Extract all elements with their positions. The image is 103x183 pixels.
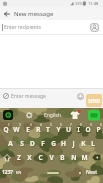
staticText: Q: [3, 125, 9, 134]
button[interactable]: V: [46, 150, 57, 165]
button[interactable]: Enter recipients: [0, 20, 103, 34]
staticText: Y: [56, 125, 61, 134]
button[interactable]: S: [16, 136, 27, 150]
button[interactable]: G: [48, 136, 58, 150]
staticText: C: [38, 153, 43, 162]
staticText: New message: [14, 10, 54, 18]
staticText: K: [81, 139, 86, 148]
button[interactable]: F: [38, 136, 48, 150]
staticText: 6: [60, 123, 62, 127]
button[interactable]: 9: [83, 122, 93, 136]
staticText: Z: [17, 153, 21, 162]
staticText: 5: [50, 123, 52, 127]
staticText: 3: [30, 123, 32, 127]
staticText: V: [49, 153, 54, 162]
staticText: 7: [70, 123, 72, 127]
staticText: L: [91, 139, 95, 148]
staticText: 2: [19, 123, 21, 127]
staticText: R: [36, 125, 41, 134]
button[interactable]: EN: [16, 170, 22, 175]
button[interactable]: [26, 112, 33, 119]
button[interactable]: B: [57, 150, 68, 165]
button[interactable]: [0, 150, 13, 165]
button[interactable]: C: [35, 150, 46, 165]
button[interactable]: [47, 172, 59, 174]
staticText: P: [96, 125, 101, 134]
button[interactable]: [70, 110, 81, 121]
button[interactable]: 2: [11, 122, 22, 136]
staticText: I: [77, 125, 80, 134]
button[interactable]: 0: [93, 122, 103, 136]
staticText: J: [72, 139, 75, 148]
staticText: X: [27, 153, 32, 162]
staticText: 33%: [75, 1, 83, 6]
staticText: 11:48: [88, 1, 99, 6]
button[interactable]: 6: [53, 122, 63, 136]
button[interactable]: 4: [33, 122, 43, 136]
staticText: 9: [90, 123, 92, 127]
staticText: E: [26, 125, 30, 134]
staticText: W: [13, 125, 20, 134]
button[interactable]: A: [5, 136, 16, 150]
button[interactable]: English: [44, 112, 62, 119]
button[interactable]: 123?: [2, 169, 13, 176]
button[interactable]: J: [68, 136, 78, 150]
button[interactable]: 3: [22, 122, 33, 136]
button[interactable]: K: [78, 136, 88, 150]
button[interactable]: [78, 171, 82, 175]
button[interactable]: Next: [86, 169, 98, 176]
staticText: O: [85, 125, 91, 134]
staticText: 0: [100, 123, 102, 127]
staticText: Enter message: [11, 93, 46, 100]
staticText: 8: [80, 123, 82, 127]
button[interactable]: [88, 110, 100, 121]
staticText: U: [66, 125, 71, 134]
staticText: N: [71, 153, 77, 162]
button[interactable]: [90, 23, 99, 32]
staticText: 1: [8, 123, 10, 127]
button[interactable]: 1: [0, 122, 11, 136]
button[interactable]: H: [58, 136, 68, 150]
button[interactable]: [90, 150, 103, 165]
staticText: M: [81, 153, 88, 162]
button[interactable]: [77, 93, 84, 100]
staticText: F: [41, 139, 45, 148]
staticText: H: [61, 139, 66, 148]
staticText: T: [46, 125, 50, 134]
button[interactable]: [3, 110, 13, 120]
staticText: 4: [40, 123, 42, 127]
button[interactable]: Z: [13, 150, 24, 165]
staticText: S: [20, 139, 24, 148]
staticText: B: [60, 153, 65, 162]
button[interactable]: D: [27, 136, 38, 150]
button[interactable]: N: [68, 150, 79, 165]
button[interactable]: 8: [73, 122, 83, 136]
button[interactable]: X: [24, 150, 35, 165]
staticText: SEND: [88, 98, 100, 104]
button[interactable]: SEND: [86, 94, 102, 107]
button[interactable]: 5: [43, 122, 53, 136]
button[interactable]: L: [88, 136, 98, 150]
button[interactable]: 7: [63, 122, 73, 136]
staticText: G: [51, 139, 56, 148]
button[interactable]: New message: [0, 7, 103, 20]
button[interactable]: M: [79, 150, 90, 165]
button[interactable]: Enter message: [0, 88, 103, 108]
staticText: Enter recipients: [4, 24, 41, 31]
staticText: A: [8, 139, 13, 148]
staticText: D: [30, 139, 35, 148]
